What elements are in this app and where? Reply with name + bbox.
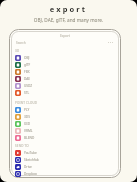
button[interactable]: 3DS <box>15 113 59 120</box>
button[interactable]: More options <box>108 41 117 44</box>
staticText: BLEND <box>24 136 35 140</box>
button[interactable]: Drive <box>15 163 59 170</box>
staticText: POINT CLOUD <box>15 101 38 105</box>
button[interactable]: X3D <box>15 120 59 127</box>
button[interactable]: VRML <box>15 127 59 134</box>
staticText: OBJ <box>24 56 30 60</box>
button[interactable]: Dropbox <box>15 170 59 177</box>
staticText: export <box>0 4 137 14</box>
staticText: 3D <box>15 49 20 53</box>
button[interactable]: STL <box>15 89 59 96</box>
staticText: X3D <box>24 122 31 126</box>
staticText: Dropbox <box>24 172 37 176</box>
staticText: DAE <box>24 77 31 81</box>
staticText: Search <box>16 41 26 45</box>
staticText: OBJ, DAE, glTF, and many more. <box>0 17 137 23</box>
button[interactable]: Sketchfab <box>15 156 59 163</box>
button[interactable]: YouTube <box>15 149 59 156</box>
staticText: Drive <box>24 165 32 169</box>
staticText: • • • <box>108 41 113 44</box>
button[interactable]: DAE <box>15 75 59 82</box>
staticText: glTF <box>24 63 31 67</box>
staticText: USDZ <box>24 84 33 88</box>
staticText: Sketchfab <box>24 158 39 162</box>
staticText: FBX <box>24 70 30 74</box>
staticText: VRML <box>24 129 33 133</box>
staticText: STL <box>24 91 30 95</box>
staticText: YouTube <box>24 151 37 155</box>
staticText: 3DS <box>24 115 30 119</box>
staticText: Export <box>9 34 121 38</box>
button[interactable]: USDZ <box>15 82 59 89</box>
button[interactable]: FBX <box>15 68 59 75</box>
staticText: PLY <box>24 108 30 112</box>
staticText: SEND TO <box>15 144 29 148</box>
button[interactable]: glTF <box>15 61 59 68</box>
button[interactable]: BLEND <box>15 134 59 141</box>
button[interactable]: PLY <box>15 106 59 113</box>
button[interactable]: OBJ <box>15 54 59 61</box>
